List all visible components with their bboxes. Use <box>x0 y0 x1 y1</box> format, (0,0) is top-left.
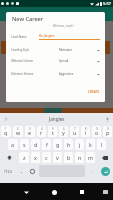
staticText: 5 <box>52 127 54 131</box>
button[interactable]: 8 <box>81 126 90 137</box>
staticText: d <box>34 141 38 148</box>
staticText: t <box>52 129 54 136</box>
button[interactable]: a <box>8 139 18 150</box>
staticText: b <box>67 154 71 161</box>
button[interactable]: s <box>20 139 29 150</box>
staticText: a <box>11 141 15 148</box>
staticText: o <box>95 129 99 136</box>
button[interactable]: g <box>53 139 62 150</box>
button[interactable]: 1 <box>1 126 11 137</box>
button[interactable]: ?123 <box>1 165 15 177</box>
staticText: 2 <box>17 127 19 131</box>
staticText: CREATE <box>88 90 100 94</box>
button[interactable]: More suggestions <box>0 113 11 125</box>
staticText: v <box>56 154 59 161</box>
button[interactable]: CREATE <box>85 88 103 96</box>
button[interactable]: m <box>86 152 95 163</box>
staticText: . <box>91 168 93 175</box>
staticText: l <box>101 141 103 148</box>
staticText: f <box>46 141 48 148</box>
button[interactable]: Defensive Scheme <box>6 69 105 78</box>
staticText: ?123 <box>4 169 12 174</box>
staticText: 4 <box>41 127 43 131</box>
staticText: Welcome, coach! <box>53 24 74 28</box>
staticText: 5:57 <box>103 1 111 6</box>
button[interactable]: Coaching Style <box>6 45 105 54</box>
button[interactable]: x <box>31 152 40 163</box>
staticText: q <box>4 129 8 136</box>
button[interactable]: f <box>42 139 51 150</box>
staticText: Coaching Style <box>11 48 29 52</box>
button[interactable]: Back <box>20 186 32 198</box>
staticText: i <box>85 129 87 136</box>
staticText: Coach Name <box>11 35 27 39</box>
button[interactable]: Jangles <box>11 113 102 125</box>
button[interactable]: Recents <box>76 186 88 198</box>
button[interactable]: h <box>64 139 73 150</box>
button[interactable]: 5 <box>48 126 57 137</box>
staticText: Defensive Scheme <box>11 72 34 76</box>
button[interactable]: l <box>97 139 106 150</box>
button[interactable]: k <box>86 139 95 150</box>
staticText: New Career <box>12 15 44 23</box>
button[interactable]: 9 <box>92 126 101 137</box>
button[interactable]: Voice input <box>102 113 113 125</box>
staticText: Offensive Scheme <box>11 59 33 63</box>
button[interactable]: Comma <box>17 165 26 177</box>
staticText: z <box>23 154 26 161</box>
staticText: g <box>56 141 60 148</box>
button[interactable]: Offensive Scheme <box>6 56 105 65</box>
button[interactable]: Shift <box>1 152 17 163</box>
staticText: 6 <box>63 127 65 131</box>
staticText: m <box>88 154 94 161</box>
staticText: u <box>73 129 77 136</box>
staticText: , <box>21 168 23 175</box>
button[interactable]: d <box>31 139 40 150</box>
button[interactable]: 6 <box>59 126 68 137</box>
staticText: j <box>79 141 81 148</box>
staticText: x <box>34 154 37 161</box>
button[interactable]: Enter <box>97 164 113 178</box>
staticText: 7 <box>74 127 76 131</box>
button[interactable]: Backspace <box>97 152 112 163</box>
staticText: c <box>45 154 48 161</box>
button[interactable]: 7 <box>70 126 79 137</box>
staticText: 0 <box>107 127 109 131</box>
staticText: Motivator <box>59 48 72 52</box>
staticText: Bo Jangles <box>39 34 55 38</box>
button[interactable]: Period <box>87 165 96 177</box>
staticText: Jangles <box>49 116 65 122</box>
staticText: Aggressive <box>59 72 74 76</box>
staticText: Spread <box>59 59 69 63</box>
button[interactable]: n <box>75 152 84 163</box>
staticText: w <box>16 129 21 136</box>
button[interactable]: c <box>42 152 51 163</box>
button[interactable]: j <box>75 139 84 150</box>
button[interactable]: Switch keyboard <box>99 186 111 198</box>
button[interactable]: Home <box>48 186 60 198</box>
staticText: s <box>23 141 26 148</box>
staticText: h <box>67 141 71 148</box>
button[interactable]: 4 <box>37 126 46 137</box>
staticText: e <box>28 129 32 136</box>
button[interactable]: Emoji <box>28 165 37 177</box>
staticText: n <box>78 154 82 161</box>
staticText: 9 <box>96 127 98 131</box>
staticText: y <box>62 129 65 136</box>
staticText: p <box>106 129 110 136</box>
staticText: 1 <box>5 127 7 131</box>
button[interactable]: 2 <box>13 126 23 137</box>
staticText: 8 <box>85 127 87 131</box>
button[interactable]: Coach Name <box>6 32 105 41</box>
button[interactable]: v <box>53 152 62 163</box>
button[interactable]: b <box>64 152 73 163</box>
staticText: k <box>89 141 92 148</box>
staticText: r <box>40 129 43 136</box>
button[interactable]: 0 <box>103 126 112 137</box>
staticText: 3 <box>29 127 31 131</box>
button[interactable]: 3 <box>25 126 35 137</box>
button[interactable]: z <box>19 152 29 163</box>
